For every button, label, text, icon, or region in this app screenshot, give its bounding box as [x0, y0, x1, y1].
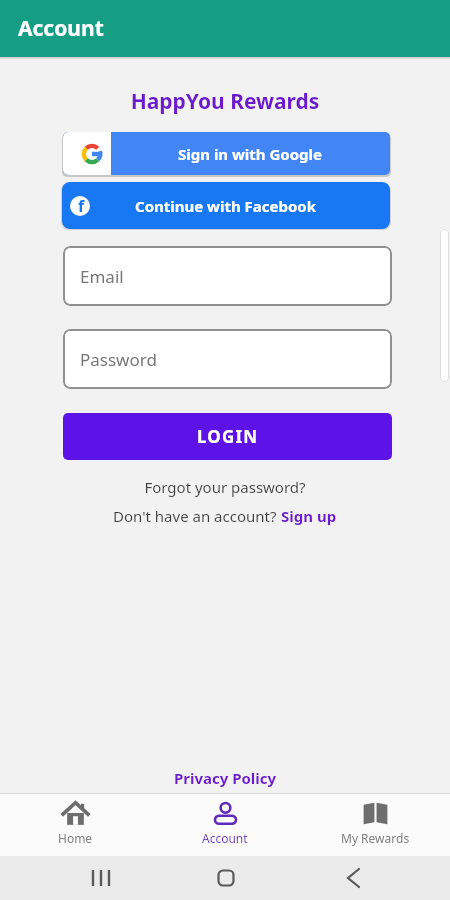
staticText: LOGIN — [197, 425, 259, 448]
staticText: Account — [18, 14, 104, 43]
button[interactable]: LOGIN — [63, 413, 392, 460]
staticText: Continue with Facebook — [135, 196, 317, 216]
button[interactable]: Account — [150, 794, 300, 856]
button[interactable]: Sign up — [281, 506, 337, 526]
staticText: Email — [80, 265, 124, 288]
staticText: Account — [202, 830, 248, 846]
staticText: Home — [58, 830, 93, 846]
button[interactable]: Forgot your password? — [0, 477, 450, 497]
staticText: Don't have an account? — [113, 506, 281, 526]
staticText: My Rewards — [341, 830, 410, 846]
button[interactable]: Privacy Policy — [0, 768, 450, 788]
staticText: f — [78, 196, 85, 215]
button[interactable]: Email — [63, 246, 392, 306]
button[interactable]: Password — [63, 329, 392, 389]
button[interactable]: My Rewards — [300, 794, 450, 856]
button[interactable]: Sign in with Google — [63, 132, 390, 175]
staticText: Sign in with Google — [178, 144, 323, 164]
button[interactable]: Home — [0, 794, 150, 856]
staticText: Password — [80, 348, 157, 371]
staticText: HappYou Rewards — [0, 87, 450, 116]
button[interactable]: f — [62, 182, 390, 229]
